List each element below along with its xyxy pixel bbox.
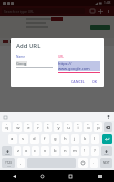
button[interactable]: Enter [102,134,112,144]
button[interactable]: n [61,146,69,156]
staticText: Search or type URL [4,9,35,14]
button[interactable]: Clipboard [3,115,7,119]
staticText: m [73,148,77,154]
button[interactable]: Back [0,170,28,182]
button[interactable]: g [51,134,59,144]
staticText: 8 [77,122,79,125]
staticText: ? [94,148,96,154]
staticText: t [47,125,49,131]
staticText: c [34,148,37,154]
staticText: h [64,136,67,142]
staticText: Add URL [16,42,41,50]
button[interactable]: , [17,158,25,168]
staticText: 1:48 [104,1,111,5]
button[interactable]: New tab [96,7,104,15]
staticText: l [94,136,96,142]
button[interactable]: Emoji [78,158,88,168]
button[interactable]: d [30,134,39,144]
staticText: ! [84,148,86,154]
button[interactable]: Voice input [106,114,111,119]
staticText: y [57,125,60,131]
staticText: b [54,148,57,154]
staticText: 1 [6,122,8,125]
staticText: o [87,125,90,131]
button[interactable]: m [71,146,79,156]
button[interactable]: Shift [2,146,12,156]
staticText: 0 [97,122,99,125]
button[interactable]: ? [91,146,99,156]
button[interactable]: . [90,158,98,168]
staticText: 3 [27,122,29,125]
staticText: ?123 [5,161,12,165]
button[interactable]: 0 [94,122,102,132]
staticText: 5 [47,122,49,125]
staticText: https://www.google.com [58,61,100,71]
button[interactable]: b [51,146,59,156]
staticText: caps [104,153,109,156]
button[interactable]: j [71,134,79,144]
button[interactable]: s [19,134,28,144]
staticText: x [25,148,28,154]
staticText: z [17,148,19,154]
button[interactable]: URL [58,55,100,73]
button[interactable]: Backspace [104,122,112,132]
button[interactable]: f [41,134,49,144]
staticText: g [54,136,57,142]
button[interactable]: OK [90,78,100,85]
button[interactable]: Name [16,55,53,68]
button[interactable]: Next field [100,158,112,168]
staticText: 4 [37,122,39,125]
button[interactable]: k [81,134,89,144]
staticText: 7 [67,122,69,125]
button[interactable]: CANCEL [69,78,87,85]
staticText: Name [16,55,25,59]
staticText: a [11,136,14,142]
button[interactable]: 1 [2,122,11,132]
button[interactable]: 6 [54,122,62,132]
button[interactable]: Symbols [2,158,15,168]
button[interactable]: 9 [84,122,92,132]
staticText: q [5,125,8,131]
staticText: . [93,160,95,166]
staticText: i [77,125,79,131]
staticText: 9 [87,122,89,125]
staticText: s [22,136,25,142]
staticText: 123 [7,165,11,168]
button[interactable]: Shift [101,146,112,156]
button[interactable]: 2 [13,122,22,132]
button[interactable]: z [14,146,21,156]
staticText: w [16,125,20,131]
staticText: p [97,125,100,131]
staticText: j [74,136,76,142]
staticText: Goog [16,61,27,66]
button[interactable]: 8 [74,122,82,132]
button[interactable]: x [23,146,30,156]
button[interactable]: c [32,146,39,156]
button[interactable]: 3 [24,122,32,132]
button[interactable]: l [91,134,99,144]
button[interactable]: 4 [34,122,42,132]
button[interactable]: More options [104,7,112,15]
staticText: k [84,136,87,142]
button[interactable]: Hide keyboard [85,170,114,182]
button[interactable]: Home [28,170,56,182]
button[interactable]: v [41,146,49,156]
button[interactable]: 5 [44,122,52,132]
button[interactable]: ! [81,146,89,156]
button[interactable]: Tabs [88,7,96,15]
staticText: , [20,160,22,166]
button[interactable]: Recent apps [56,170,85,182]
button[interactable]: a [8,134,17,144]
staticText: OK [92,79,98,84]
staticText: caps [5,153,10,156]
button[interactable]: 7 [64,122,72,132]
staticText: CANCEL [71,79,85,84]
staticText: 2 [17,122,19,125]
staticText: u [67,125,70,131]
staticText: f [44,136,46,142]
button[interactable]: Search or type URL [2,8,85,14]
button[interactable]: h [61,134,69,144]
staticText: NEXT [103,161,110,165]
